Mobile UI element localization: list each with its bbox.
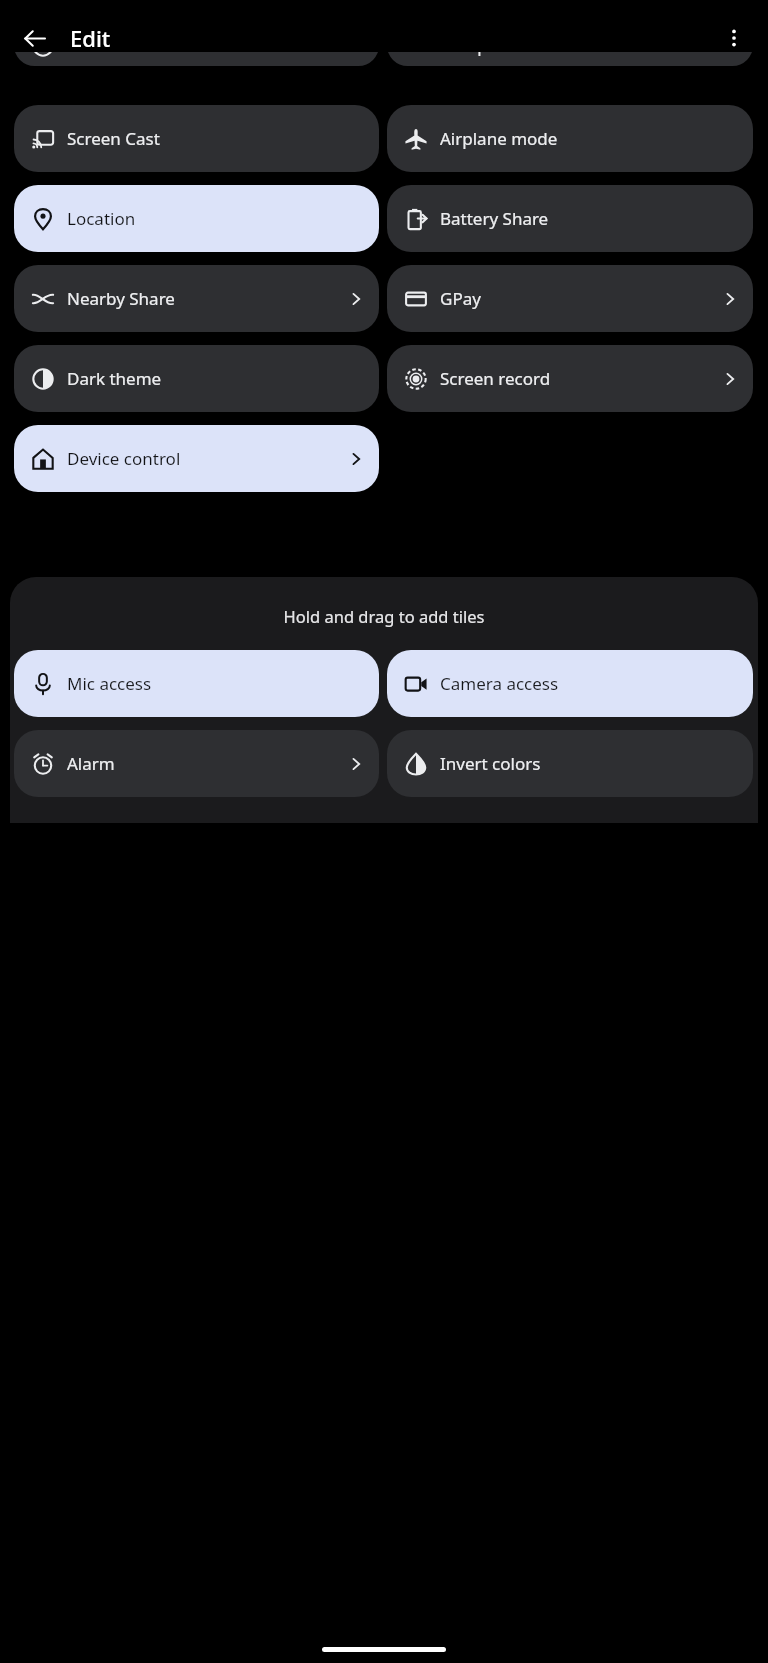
button[interactable]: Nearby Share	[14, 265, 379, 332]
staticText: Battery Share	[440, 207, 738, 230]
button[interactable]: Back	[10, 14, 58, 62]
staticText: Dark theme	[67, 367, 364, 390]
staticText: Hotspot	[440, 52, 738, 57]
button[interactable]: Device control	[14, 425, 379, 492]
button[interactable]: Screen record	[387, 345, 753, 412]
button[interactable]: Hotspot	[387, 52, 753, 66]
button[interactable]: Camera access	[387, 650, 753, 717]
staticText: Hold and drag to add tiles	[10, 605, 758, 627]
staticText: Screen record	[440, 367, 722, 390]
staticText: GPay	[440, 287, 722, 310]
staticText: Alarm	[67, 752, 348, 775]
button[interactable]: Do Not Disturb	[14, 52, 379, 66]
button[interactable]: Screen Cast	[14, 105, 379, 172]
button[interactable]: More options	[712, 16, 756, 60]
button[interactable]: Location	[14, 185, 379, 252]
button[interactable]: Battery Share	[387, 185, 753, 252]
staticText: Mic access	[67, 672, 364, 695]
staticText: Nearby Share	[67, 287, 348, 310]
button[interactable]: Alarm	[14, 730, 379, 797]
staticText: Location	[67, 207, 364, 230]
staticText: Edit	[70, 23, 111, 53]
button[interactable]: Invert colors	[387, 730, 753, 797]
button[interactable]: Mic access	[14, 650, 379, 717]
staticText: Screen Cast	[67, 127, 364, 150]
button[interactable]: Airplane mode	[387, 105, 753, 172]
staticText: Invert colors	[440, 752, 738, 775]
button[interactable]: Dark theme	[14, 345, 379, 412]
staticText: Camera access	[440, 672, 738, 695]
staticText: Device control	[67, 447, 348, 470]
button[interactable]: GPay	[387, 265, 753, 332]
staticText: Airplane mode	[440, 127, 738, 150]
